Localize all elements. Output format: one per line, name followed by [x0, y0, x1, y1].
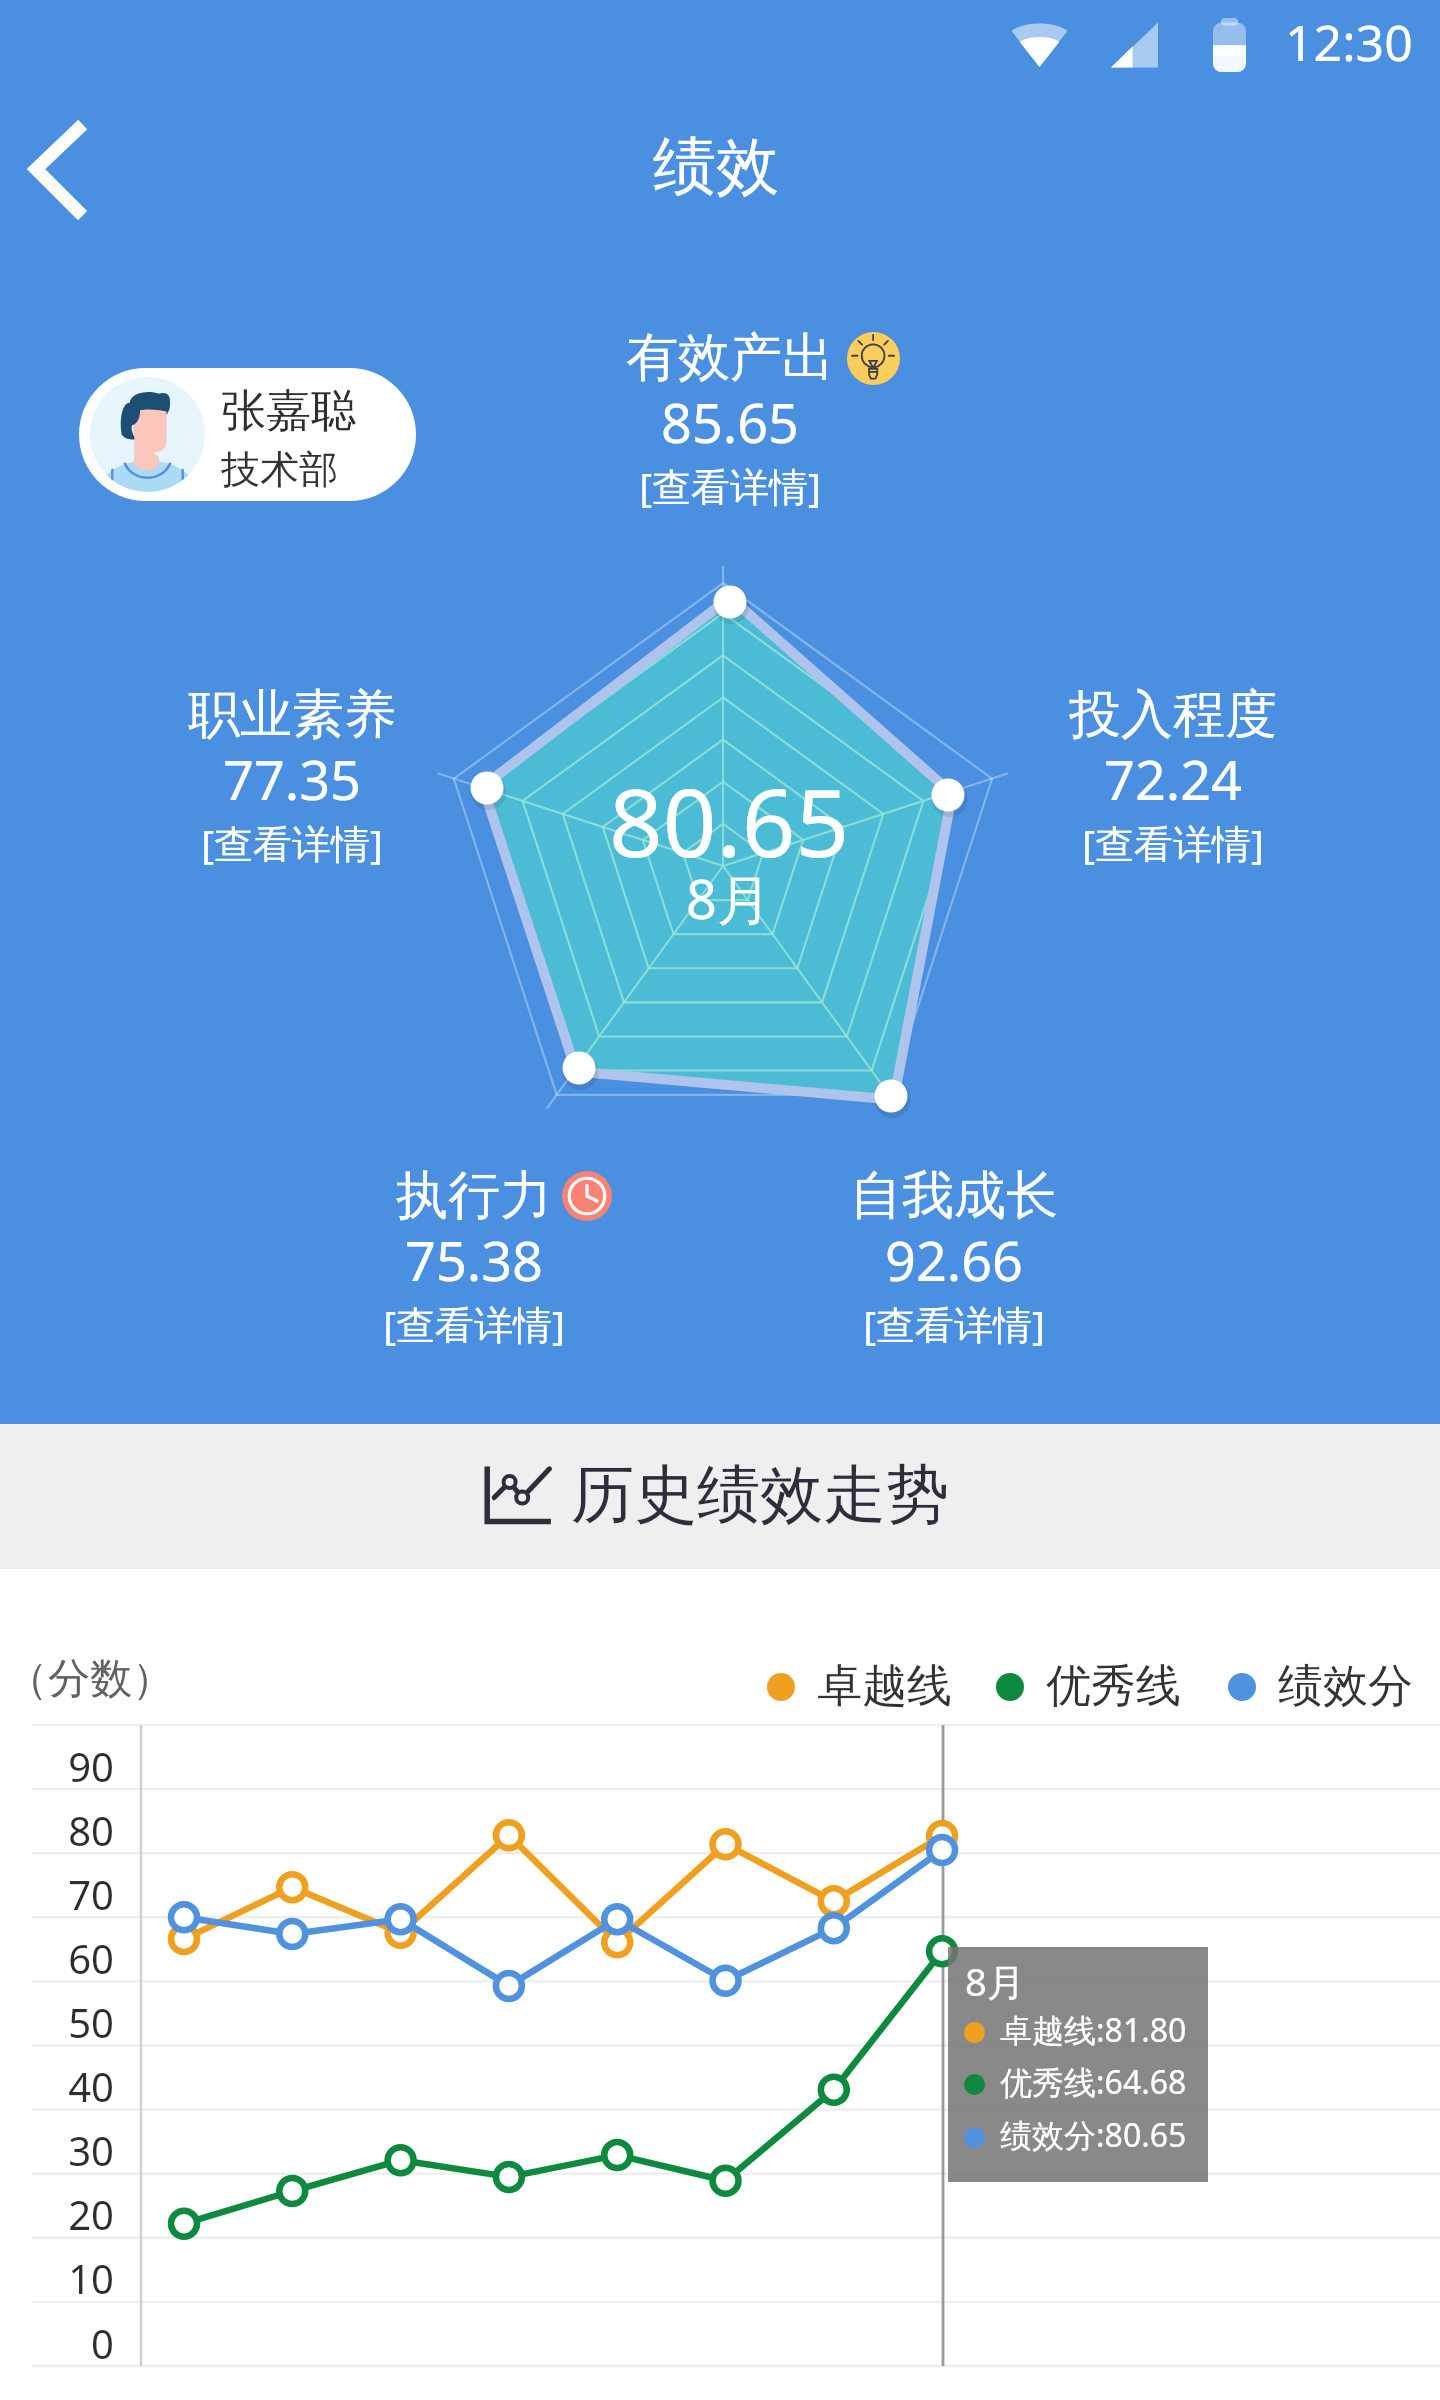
staticText: 有效产出 — [470, 325, 990, 391]
staticText: 卓越线 — [817, 1658, 952, 1715]
staticText: 80 — [28, 1803, 114, 1857]
staticText: 卓越线:81.80 — [1000, 2008, 1187, 2052]
staticText: 72.24 — [913, 742, 1433, 816]
staticText: [查看详情] — [913, 816, 1433, 869]
button[interactable]: 张嘉聪 — [79, 368, 416, 501]
staticText: 50 — [28, 1995, 114, 2049]
staticText: 职业素养 — [32, 682, 552, 748]
staticText: [查看详情] — [694, 1297, 1214, 1350]
staticText: 绩效 — [653, 127, 779, 206]
staticText: [查看详情] — [32, 816, 552, 869]
staticText: 优秀线 — [1046, 1658, 1181, 1715]
staticText: 30 — [28, 2123, 114, 2177]
staticText: 10 — [28, 2251, 114, 2305]
button[interactable]: 执行力 — [214, 1158, 734, 1348]
staticText: 绩效分 — [1278, 1658, 1413, 1715]
button[interactable]: 自我成长 — [694, 1158, 1214, 1348]
staticText: 8月 — [686, 861, 771, 935]
button[interactable]: 有效产出 — [470, 320, 990, 510]
staticText: 优秀线:64.68 — [1000, 2060, 1187, 2104]
staticText: [查看详情] — [214, 1297, 734, 1350]
staticText: 92.66 — [694, 1223, 1214, 1297]
button[interactable]: 卓越线 — [767, 1654, 952, 1719]
staticText: （分数） — [6, 1653, 174, 1706]
button[interactable]: 历史绩效走势 — [483, 1455, 949, 1534]
staticText: 12:30 — [1285, 8, 1413, 76]
staticText: 85.65 — [470, 385, 990, 459]
staticText: 8月 — [965, 1955, 1025, 2007]
staticText: 77.35 — [32, 742, 552, 816]
staticText: 70 — [28, 1867, 114, 1921]
staticText: [查看详情] — [470, 459, 990, 512]
staticText: 90 — [28, 1739, 114, 1793]
staticText: 历史绩效走势 — [571, 1455, 949, 1534]
staticText: 技术部 — [221, 445, 338, 494]
staticText: 60 — [28, 1931, 114, 1985]
staticText: 75.38 — [214, 1223, 734, 1297]
staticText: 绩效分:80.65 — [1000, 2113, 1187, 2157]
staticText: 执行力 — [214, 1163, 734, 1229]
staticText: 张嘉聪 — [221, 383, 356, 440]
button[interactable]: 绩效分 — [1228, 1654, 1413, 1719]
button[interactable]: 投入程度 — [913, 677, 1433, 867]
staticText: 20 — [28, 2187, 114, 2241]
button[interactable]: 职业素养 — [32, 677, 552, 867]
staticText: 0 — [28, 2316, 114, 2370]
staticText: 自我成长 — [694, 1163, 1214, 1229]
staticText: 80.65 — [609, 757, 850, 885]
button[interactable]: 优秀线 — [996, 1654, 1181, 1719]
button[interactable]: Back — [0, 110, 120, 230]
staticText: 40 — [28, 2059, 114, 2113]
staticText: 投入程度 — [913, 682, 1433, 748]
